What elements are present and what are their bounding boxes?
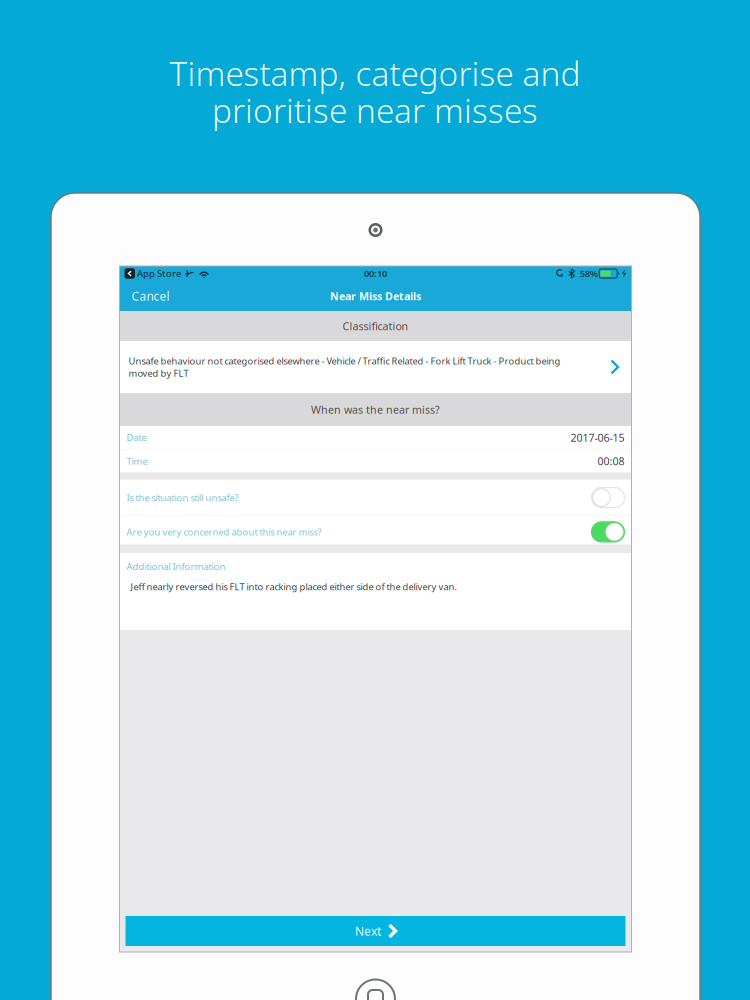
button[interactable]: Is the situation still unsafe? — [119, 480, 631, 516]
staticText: Unsafe behaviour not categorised elsewhe… — [128, 355, 560, 379]
staticText: Next — [355, 923, 381, 939]
button[interactable]: Cancel — [119, 281, 181, 311]
button[interactable]: Time — [119, 450, 631, 473]
button[interactable]: Next — [125, 916, 625, 946]
staticText: Time — [126, 455, 147, 467]
staticText: Are you very concerned about this near m… — [126, 526, 321, 538]
staticText: App Store — [135, 267, 181, 280]
staticText: Cancel — [131, 288, 169, 304]
staticText: Is the situation still unsafe? — [126, 491, 238, 504]
staticText: Timestamp, categorise and — [169, 51, 580, 95]
staticText: 00:10 — [364, 267, 387, 280]
staticText: When was the near miss? — [311, 402, 440, 417]
staticText: 2017-06-15 — [570, 430, 624, 445]
button[interactable]: Unsafe behaviour not categorised elsewhe… — [119, 341, 631, 393]
staticText: Date — [126, 431, 146, 444]
button[interactable]: Date — [119, 426, 631, 449]
staticText: 00:08 — [597, 454, 624, 468]
staticText: Additional Information — [126, 560, 225, 572]
staticText: Jeff nearly reversed his FLT into rackin… — [130, 580, 457, 593]
staticText: Near Miss Details — [330, 289, 421, 303]
staticText: prioritise near misses — [212, 88, 538, 132]
staticText: Classification — [342, 319, 408, 333]
staticText: 58% — [580, 267, 598, 280]
button[interactable]: Are you very concerned about this near m… — [119, 516, 631, 545]
